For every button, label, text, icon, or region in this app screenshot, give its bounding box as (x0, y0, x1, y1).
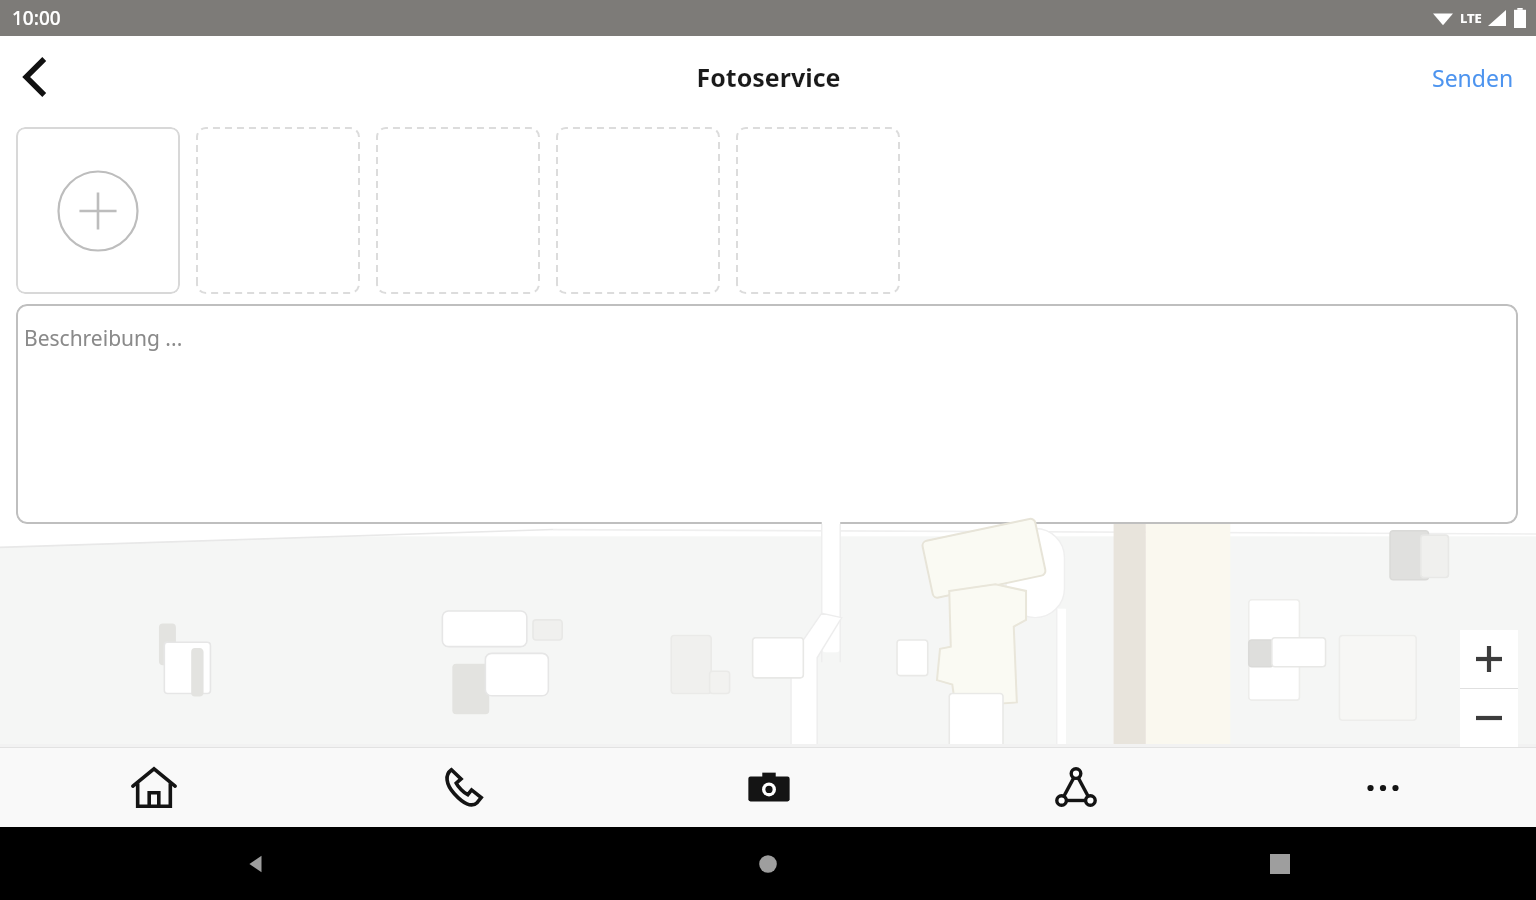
button[interactable]: Leerer Fotoplatz (196, 127, 360, 294)
button[interactable]: Leerer Fotoplatz (736, 127, 900, 294)
button[interactable]: Teilen (922, 748, 1229, 827)
button[interactable]: Start (0, 748, 308, 827)
button[interactable]: Hineinzoomen (1460, 630, 1518, 688)
button[interactable]: Anrufen (308, 748, 615, 827)
button[interactable]: Back (0, 42, 70, 112)
staticText: 10:00 (12, 5, 61, 31)
button[interactable]: Kamera (615, 748, 922, 827)
button[interactable]: Foto hinzufügen (16, 127, 180, 294)
staticText: LTE (1460, 9, 1482, 27)
button[interactable]: Zurück (0, 827, 512, 900)
button[interactable]: Leerer Fotoplatz (556, 127, 720, 294)
button[interactable]: Beschreibung ... (16, 304, 1518, 524)
button[interactable]: Startseite (512, 827, 1024, 900)
staticText: Beschreibung ... (24, 324, 183, 353)
staticText: Senden (1432, 62, 1514, 93)
button[interactable]: Senden (1410, 48, 1536, 107)
button[interactable]: Herauszoomen (1460, 689, 1518, 747)
button[interactable]: Übersicht (1024, 827, 1536, 900)
button[interactable]: Leerer Fotoplatz (376, 127, 540, 294)
staticText: Fotoservice (696, 60, 841, 94)
button[interactable]: Mehr (1229, 748, 1536, 827)
